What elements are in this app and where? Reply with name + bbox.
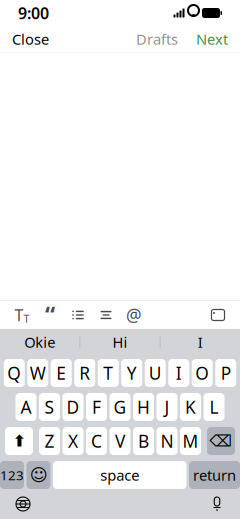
button[interactable]: Dictate: [202, 491, 232, 517]
staticText: Hi: [112, 332, 127, 352]
staticText: “: [45, 300, 55, 330]
button[interactable]: X: [62, 427, 83, 455]
staticText: Close: [12, 29, 49, 49]
staticText: T: [103, 361, 113, 384]
staticText: G: [113, 395, 126, 418]
staticText: I: [176, 361, 182, 384]
staticText: E: [56, 361, 66, 384]
button[interactable]: O: [192, 359, 213, 387]
staticText: J: [164, 395, 169, 418]
button[interactable]: Switch keyboard: [8, 491, 38, 517]
staticText: B: [138, 429, 149, 452]
staticText: M: [182, 429, 198, 452]
button[interactable]: 123: [0, 461, 24, 489]
staticText: Drafts: [136, 29, 178, 49]
button[interactable]: Quote: [36, 302, 64, 328]
staticText: W: [30, 361, 46, 384]
button[interactable]: Shift: [5, 427, 33, 455]
button[interactable]: U: [145, 359, 166, 387]
button[interactable]: Hi: [80, 329, 160, 355]
button[interactable]: Delete: [207, 427, 235, 455]
staticText: Y: [127, 361, 137, 384]
button[interactable]: B: [133, 427, 154, 455]
staticText: A: [20, 395, 31, 418]
button[interactable]: V: [109, 427, 130, 455]
button[interactable]: I: [160, 329, 240, 355]
button[interactable]: Emoji: [26, 461, 50, 489]
staticText: 9:00: [18, 2, 49, 24]
staticText: 123: [0, 466, 24, 484]
button[interactable]: Text format: [8, 302, 36, 328]
button[interactable]: W: [27, 359, 48, 387]
button[interactable]: Indent: [92, 302, 120, 328]
button[interactable]: Q: [4, 359, 25, 387]
button[interactable]: J: [156, 393, 177, 421]
button[interactable]: space: [53, 461, 186, 489]
staticText: Q: [7, 361, 21, 384]
staticText: ⬆: [12, 432, 25, 450]
staticText: C: [91, 429, 102, 452]
button[interactable]: M: [180, 427, 201, 455]
button[interactable]: Drafts: [130, 23, 184, 55]
staticText: O: [195, 361, 209, 384]
staticText: N: [160, 429, 173, 452]
staticText: H: [137, 395, 150, 418]
staticText: X: [68, 429, 78, 452]
staticText: return: [193, 465, 236, 485]
staticText: I: [198, 332, 203, 352]
button[interactable]: I: [168, 359, 189, 387]
button[interactable]: L: [203, 393, 224, 421]
staticText: D: [66, 395, 79, 418]
button[interactable]: return: [189, 461, 240, 489]
staticText: U: [149, 361, 162, 384]
button[interactable]: R: [74, 359, 95, 387]
button[interactable]: A: [15, 393, 36, 421]
staticText: Z: [44, 429, 54, 452]
button[interactable]: N: [156, 427, 177, 455]
staticText: F: [92, 395, 101, 418]
button[interactable]: Next: [184, 23, 240, 55]
staticText: ☺: [29, 465, 47, 485]
button[interactable]: S: [39, 393, 60, 421]
button[interactable]: G: [109, 393, 130, 421]
staticText: space: [100, 465, 139, 485]
staticText: T: [23, 311, 29, 326]
button[interactable]: K: [180, 393, 201, 421]
button[interactable]: D: [62, 393, 83, 421]
button[interactable]: Z: [39, 427, 60, 455]
button[interactable]: Bullet list: [64, 302, 92, 328]
button[interactable]: E: [51, 359, 72, 387]
button[interactable]: Insert photo: [204, 302, 232, 328]
staticText: Next: [196, 29, 228, 49]
button[interactable]: Mention: [120, 302, 148, 328]
button[interactable]: F: [86, 393, 107, 421]
button[interactable]: Okie: [0, 329, 79, 355]
button[interactable]: Y: [121, 359, 142, 387]
staticText: P: [221, 361, 231, 384]
button[interactable]: C: [86, 427, 107, 455]
staticText: T: [14, 304, 23, 326]
staticText: Okie: [24, 332, 55, 352]
staticText: S: [44, 395, 54, 418]
button[interactable]: T: [98, 359, 119, 387]
staticText: V: [115, 429, 125, 452]
staticText: R: [79, 361, 90, 384]
staticText: K: [185, 395, 196, 418]
staticText: ⌫: [209, 432, 232, 450]
staticText: @: [126, 303, 142, 326]
button[interactable]: P: [215, 359, 236, 387]
button[interactable]: H: [133, 393, 154, 421]
button[interactable]: Close: [0, 23, 61, 55]
staticText: L: [209, 395, 218, 418]
